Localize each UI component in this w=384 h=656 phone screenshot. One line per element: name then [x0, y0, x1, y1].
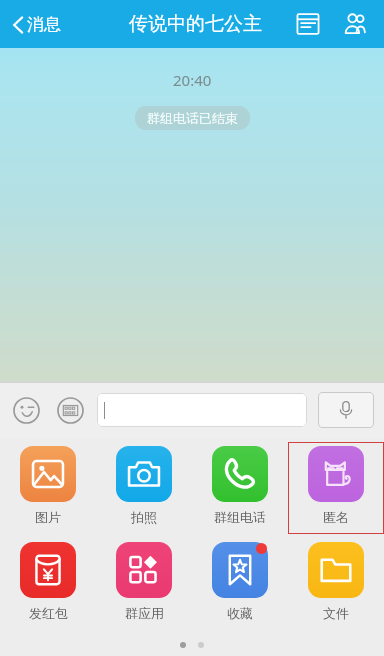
button[interactable]: 匿名: [288, 442, 384, 534]
button[interactable]: Emoji: [10, 394, 43, 427]
button[interactable]: Group notice: [290, 6, 326, 42]
button[interactable]: 收藏: [192, 538, 288, 630]
staticText: 文件: [323, 605, 349, 621]
staticText: 发红包: [29, 605, 68, 621]
button[interactable]: Voice message: [318, 392, 374, 428]
staticText: 收藏: [227, 605, 253, 621]
button[interactable]: 群应用: [96, 538, 192, 630]
button[interactable]: Keyboard: [54, 394, 87, 427]
staticText: 群应用: [125, 605, 164, 621]
button[interactable]: 图片: [0, 442, 96, 534]
staticText: 消息: [27, 14, 61, 35]
button[interactable]: 消息: [8, 8, 65, 41]
button[interactable]: [97, 393, 307, 427]
button[interactable]: Members: [336, 5, 374, 43]
button[interactable]: 文件: [288, 538, 384, 630]
staticText: 图片: [35, 509, 61, 525]
staticText: 20:40: [173, 70, 212, 90]
button[interactable]: 群组电话已结束: [135, 106, 250, 130]
staticText: 群组电话: [214, 509, 266, 525]
button[interactable]: 群组电话: [192, 442, 288, 534]
button[interactable]: 发红包: [0, 538, 96, 630]
staticText: 群组电话已结束: [147, 110, 238, 126]
staticText: 拍照: [131, 509, 157, 525]
staticText: 匿名: [323, 509, 349, 525]
staticText: 传说中的七公主: [129, 12, 262, 36]
button[interactable]: 拍照: [96, 442, 192, 534]
